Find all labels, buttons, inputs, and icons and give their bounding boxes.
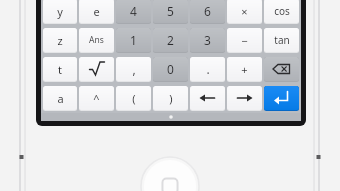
button[interactable]: 2 bbox=[153, 28, 188, 52]
button[interactable]: ^ bbox=[79, 86, 114, 110]
staticText: tan bbox=[274, 33, 290, 47]
staticText: + bbox=[241, 62, 248, 77]
button[interactable]: Delete bbox=[264, 57, 299, 81]
staticText: 3 bbox=[204, 32, 211, 48]
button[interactable]: Left bbox=[190, 86, 225, 110]
button[interactable]: e bbox=[79, 0, 114, 23]
button[interactable]: Enter bbox=[264, 86, 299, 110]
button[interactable]: 6 bbox=[190, 0, 225, 23]
staticText: Ans bbox=[89, 34, 104, 46]
button[interactable]: t bbox=[43, 57, 77, 81]
staticText: cos bbox=[274, 4, 290, 18]
staticText: a bbox=[57, 91, 64, 106]
button[interactable]: , bbox=[116, 57, 151, 81]
staticText: . bbox=[206, 61, 210, 77]
staticText: , bbox=[132, 61, 136, 77]
button[interactable]: + bbox=[227, 57, 262, 81]
button[interactable]: tan bbox=[264, 28, 299, 52]
button[interactable]: Home bbox=[141, 157, 199, 191]
button[interactable]: ) bbox=[153, 86, 188, 110]
staticText: − bbox=[241, 33, 248, 48]
button[interactable]: Square root bbox=[79, 57, 114, 81]
staticText: 2 bbox=[167, 32, 174, 48]
staticText: t bbox=[58, 62, 62, 77]
button[interactable]: ( bbox=[116, 86, 151, 110]
staticText: ( bbox=[132, 91, 136, 106]
staticText: y bbox=[57, 4, 63, 19]
button[interactable]: a bbox=[43, 86, 77, 110]
staticText: × bbox=[241, 4, 248, 19]
button[interactable]: − bbox=[227, 28, 262, 52]
button[interactable]: 1 bbox=[116, 28, 151, 52]
staticText: 4 bbox=[130, 3, 137, 19]
staticText: z bbox=[57, 33, 63, 48]
button[interactable]: 3 bbox=[190, 28, 225, 52]
staticText: ^ bbox=[93, 91, 100, 106]
button[interactable]: 0 bbox=[153, 57, 188, 81]
button[interactable]: . bbox=[190, 57, 225, 81]
button[interactable]: × bbox=[227, 0, 262, 23]
staticText: e bbox=[93, 4, 100, 19]
staticText: 5 bbox=[167, 3, 174, 19]
button[interactable]: 4 bbox=[116, 0, 151, 23]
button[interactable]: z bbox=[43, 28, 77, 52]
staticText: 6 bbox=[204, 3, 211, 19]
staticText: 0 bbox=[167, 61, 174, 77]
button[interactable]: Right bbox=[227, 86, 262, 110]
button[interactable]: Ans bbox=[79, 28, 114, 52]
button[interactable]: y bbox=[43, 0, 77, 23]
staticText: ) bbox=[169, 91, 173, 106]
button[interactable]: cos bbox=[264, 0, 299, 23]
staticText: 1 bbox=[130, 32, 137, 48]
button[interactable]: 5 bbox=[153, 0, 188, 23]
